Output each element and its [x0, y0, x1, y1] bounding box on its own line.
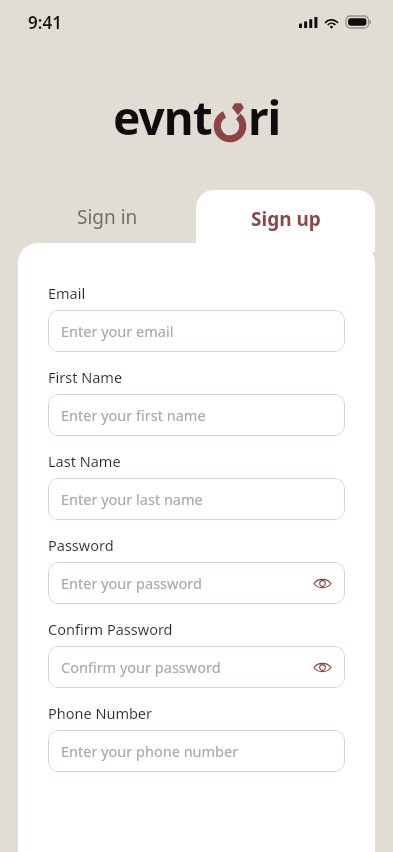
staticText: Confirm your password	[61, 657, 221, 677]
button[interactable]: Enter your last name	[48, 478, 345, 520]
button[interactable]: Toggle password visibility	[311, 572, 333, 594]
button[interactable]: Enter your password	[48, 562, 345, 604]
staticText: Enter your first name	[61, 405, 206, 425]
staticText: Password	[48, 535, 114, 555]
staticText: Sign in	[77, 204, 138, 230]
staticText: ri	[248, 86, 281, 149]
staticText: Email	[48, 283, 86, 303]
button[interactable]: Enter your phone number	[48, 730, 345, 772]
staticText: Enter your last name	[61, 489, 203, 509]
staticText: Last Name	[48, 451, 121, 471]
staticText: First Name	[48, 367, 123, 387]
staticText: Enter your email	[61, 321, 174, 341]
button[interactable]: Toggle password visibility	[311, 656, 333, 678]
staticText: Enter your password	[61, 573, 202, 593]
staticText: Sign up	[251, 206, 321, 232]
staticText: Phone Number	[48, 703, 153, 723]
staticText: evnt	[113, 86, 212, 149]
button[interactable]: Confirm your password	[48, 646, 345, 688]
staticText: Confirm Password	[48, 619, 173, 639]
button[interactable]: Enter your first name	[48, 394, 345, 436]
button[interactable]: Sign in	[18, 190, 196, 243]
staticText: 9:41	[28, 11, 62, 34]
button[interactable]: Enter your email	[48, 310, 345, 352]
staticText: Enter your phone number	[61, 741, 239, 761]
button[interactable]: Sign up	[196, 190, 375, 252]
